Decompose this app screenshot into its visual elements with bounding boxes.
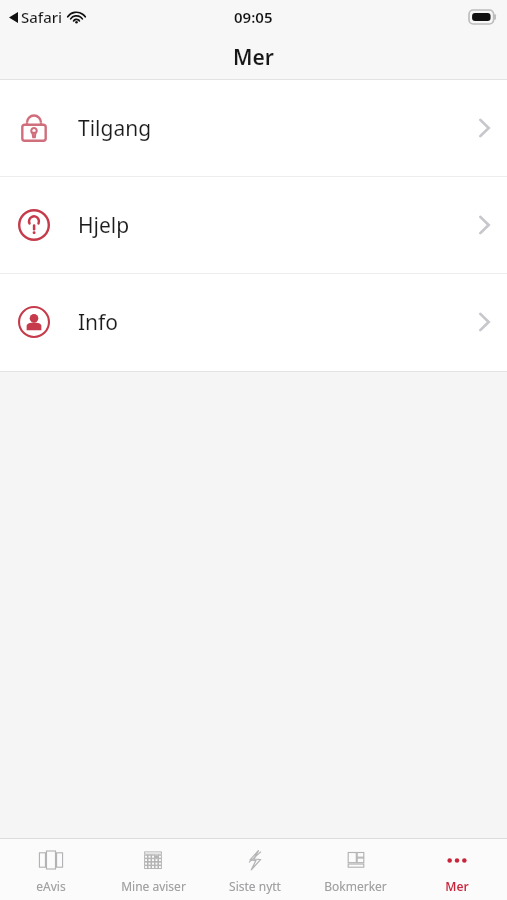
staticText: Siste nytt (229, 878, 281, 894)
button[interactable]: Mer (406, 839, 507, 900)
staticText: Tilgang (78, 114, 152, 143)
button[interactable]: Siste nytt (204, 839, 305, 900)
staticText: Mine aviser (121, 878, 186, 894)
staticText: Bokmerker (324, 878, 387, 894)
staticText: Info (78, 308, 119, 337)
staticText: Safari (21, 7, 63, 27)
button[interactable]: Bokmerker (305, 839, 406, 900)
button[interactable]: Hjelp (0, 177, 507, 273)
staticText: eAvis (36, 878, 66, 894)
staticText: Mer (445, 878, 469, 894)
button[interactable]: Info (0, 274, 507, 370)
button[interactable]: eAvis (0, 839, 102, 900)
button[interactable]: Tilgang (0, 80, 507, 176)
staticText: 09:05 (234, 7, 273, 27)
button[interactable]: Mine aviser (102, 839, 204, 900)
staticText: Mer (233, 43, 274, 72)
staticText: Hjelp (78, 211, 130, 240)
